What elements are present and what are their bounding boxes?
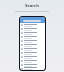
button[interactable] xyxy=(20,39,45,43)
staticText: Search xyxy=(25,3,39,9)
button[interactable] xyxy=(20,31,45,35)
button[interactable] xyxy=(20,59,45,63)
button[interactable] xyxy=(20,43,45,47)
button[interactable] xyxy=(20,51,45,55)
button[interactable] xyxy=(20,67,45,70)
button[interactable] xyxy=(20,35,45,39)
button[interactable] xyxy=(20,63,45,67)
button[interactable] xyxy=(23,20,41,22)
button[interactable] xyxy=(20,23,45,27)
button[interactable] xyxy=(20,55,45,59)
button[interactable] xyxy=(20,27,45,31)
button[interactable] xyxy=(20,47,45,51)
staticText: Find anything across your library xyxy=(15,10,49,13)
